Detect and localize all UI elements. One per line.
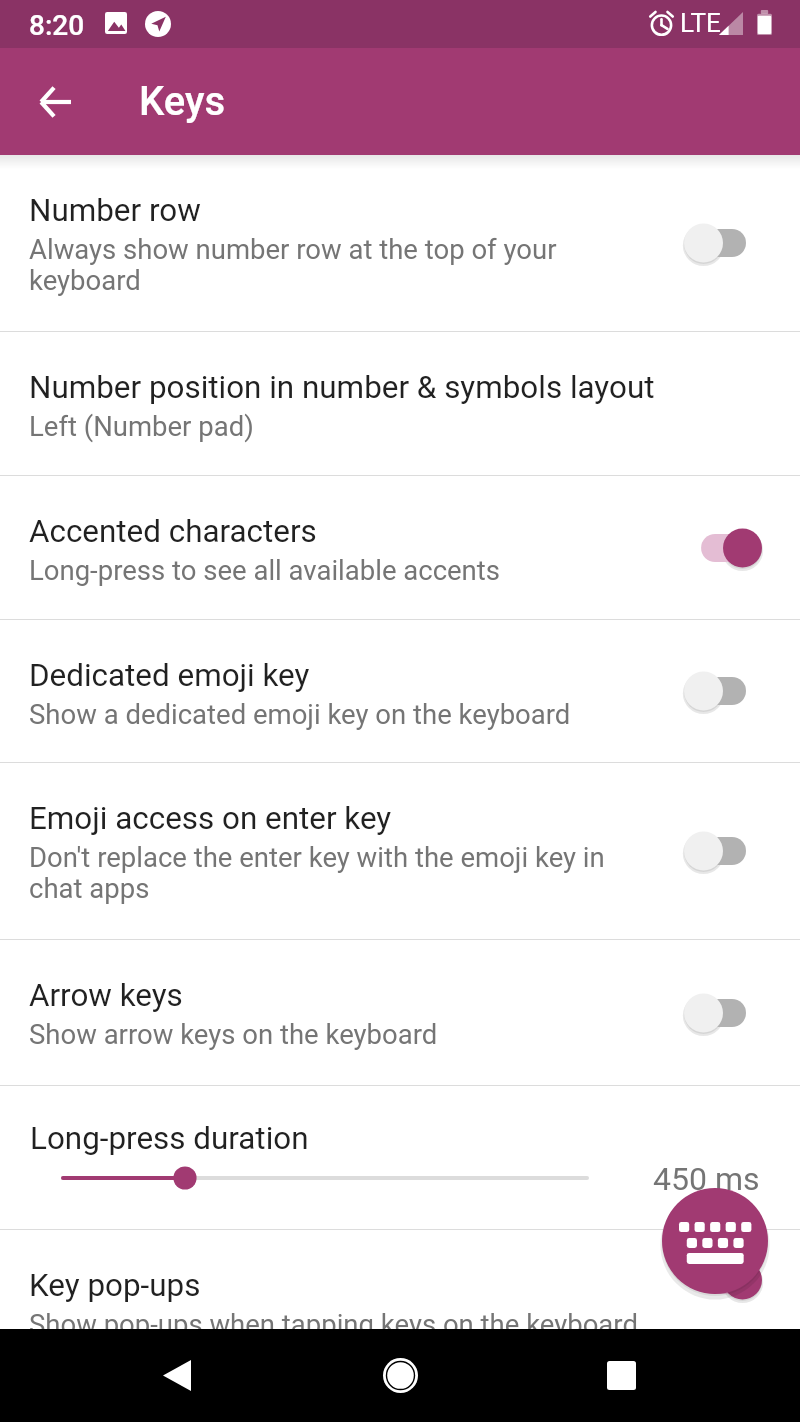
button[interactable]: Recent apps <box>573 1329 669 1422</box>
staticText: Don't replace the enter key with the emo… <box>29 841 605 905</box>
staticText: Show a dedicated emoji key on the keyboa… <box>29 698 571 730</box>
staticText: Long-press to see all available accents <box>29 554 500 586</box>
button[interactable]: Navigate up <box>7 54 103 150</box>
staticText: Accented characters <box>29 513 317 550</box>
button[interactable]: Number row <box>0 155 800 331</box>
staticText: Emoji access on enter key <box>29 800 392 837</box>
staticText: Dedicated emoji key <box>29 657 310 694</box>
staticText: Show pop-ups when tapping keys on the ke… <box>29 1308 638 1329</box>
button[interactable]: Long-press duration <box>0 1086 800 1229</box>
staticText: Left (Number pad) <box>29 410 254 442</box>
staticText: Keys <box>139 78 226 125</box>
staticText: Show arrow keys on the keyboard <box>29 1018 438 1050</box>
staticText: Number position in number & symbols layo… <box>29 369 655 406</box>
button[interactable]: Home <box>352 1329 448 1422</box>
button[interactable]: Accented characters <box>0 476 800 619</box>
staticText: Arrow keys <box>29 977 183 1014</box>
staticText: Long-press duration <box>30 1120 309 1157</box>
staticText: Key pop-ups <box>29 1267 201 1304</box>
button[interactable]: Dedicated emoji key <box>0 620 800 762</box>
button[interactable]: Back <box>129 1329 225 1422</box>
staticText: Number row <box>29 192 201 229</box>
staticText: 8:20 <box>29 9 85 42</box>
staticText: LTE <box>680 8 721 38</box>
staticText: 450 ms <box>653 1160 760 1198</box>
staticText: Always show number row at the top of you… <box>29 233 557 297</box>
button[interactable]: Number position in number & symbols layo… <box>0 332 800 475</box>
button[interactable]: Key pop-ups <box>0 1230 800 1329</box>
button[interactable]: Emoji access on enter key <box>0 763 800 939</box>
button[interactable]: Open keyboard <box>662 1188 768 1294</box>
button[interactable]: Arrow keys <box>0 940 800 1085</box>
